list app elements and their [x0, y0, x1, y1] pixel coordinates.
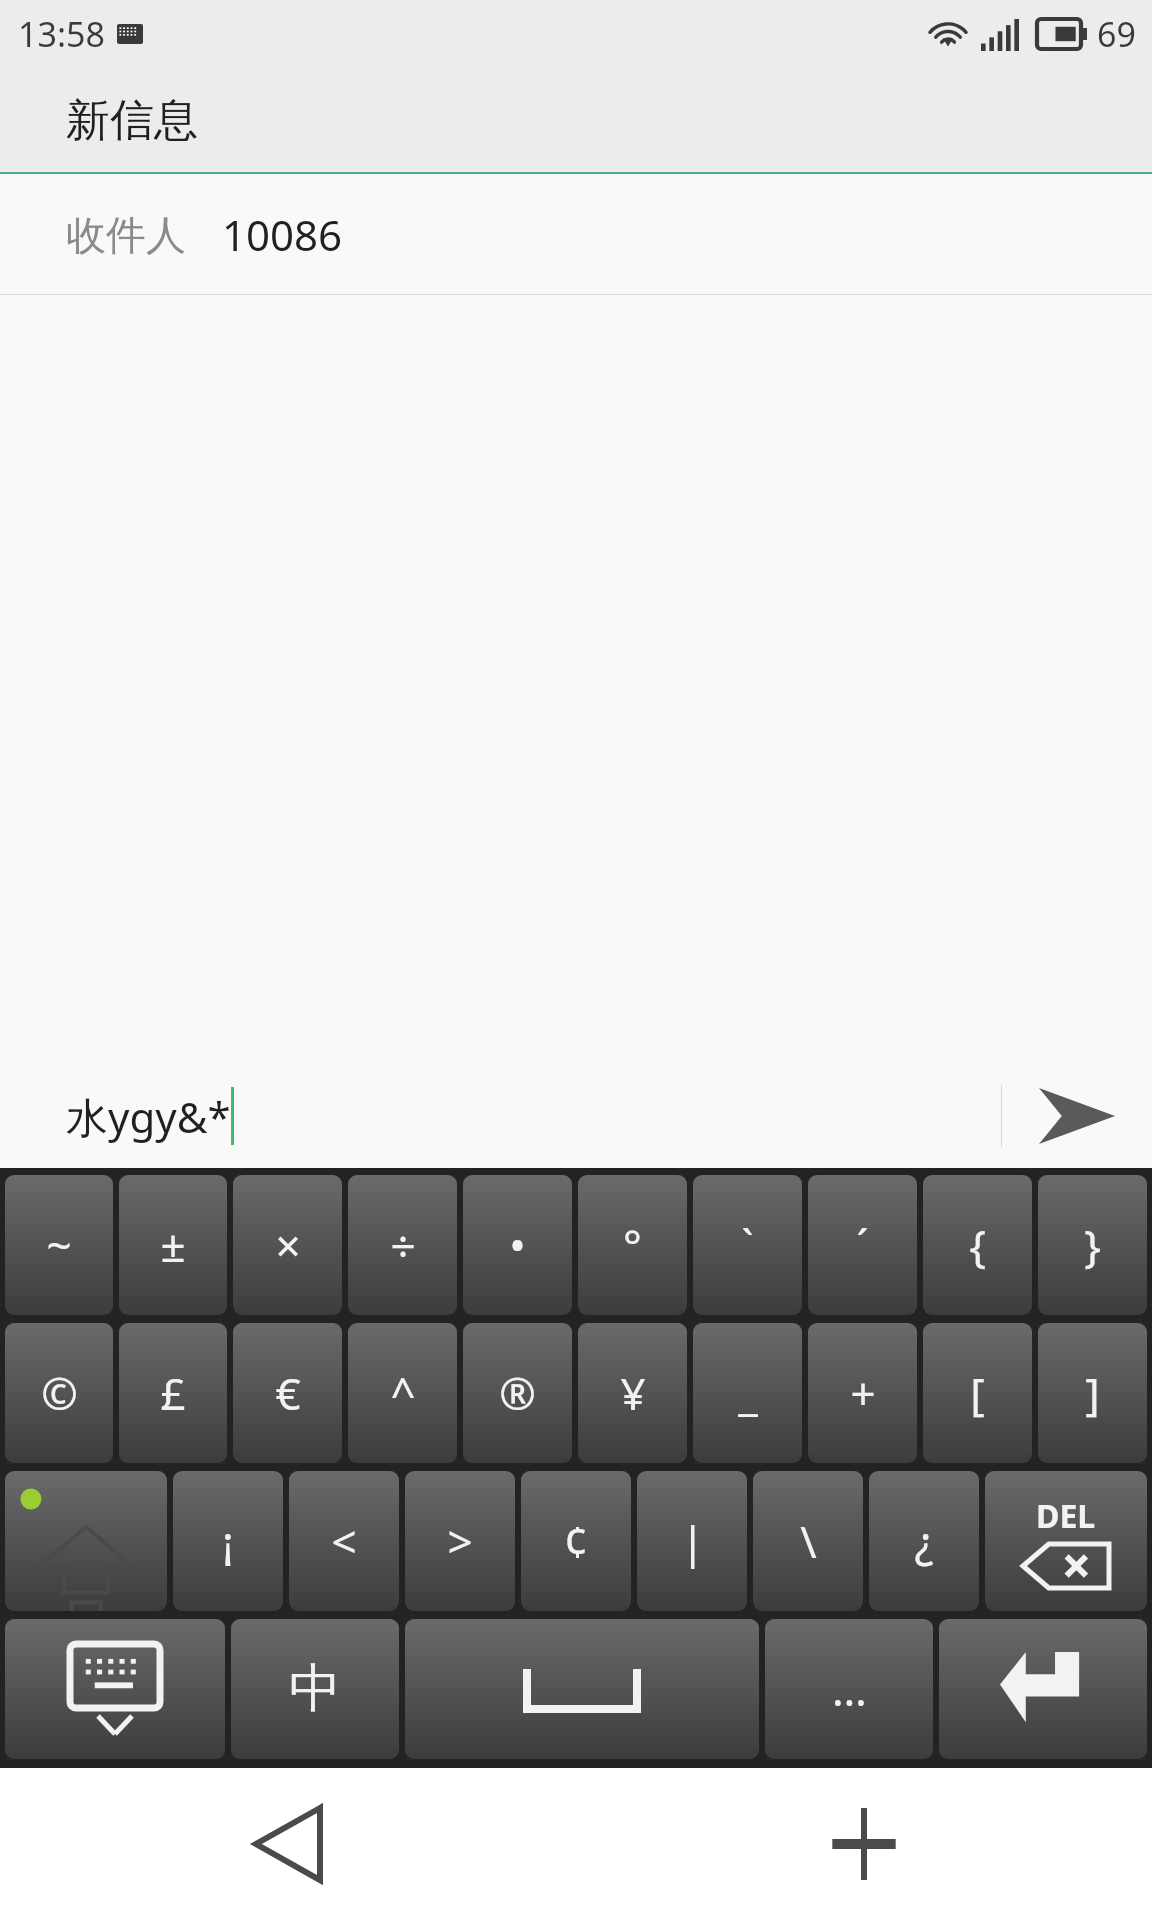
button[interactable]: Back: [0, 1768, 576, 1920]
button[interactable]: \: [753, 1471, 863, 1611]
button[interactable]: +: [808, 1323, 917, 1463]
button[interactable]: Delete: [985, 1471, 1147, 1611]
button[interactable]: £: [119, 1323, 227, 1463]
button[interactable]: >: [405, 1471, 515, 1611]
button[interactable]: _: [693, 1323, 802, 1463]
staticText: [: [970, 1363, 985, 1423]
button[interactable]: Add: [576, 1768, 1152, 1920]
staticText: 收件人: [66, 210, 186, 260]
staticText: >: [447, 1511, 473, 1571]
staticText: ¿: [914, 1511, 934, 1571]
staticText: 水ygy&*: [66, 1088, 231, 1145]
button[interactable]: °: [578, 1175, 687, 1315]
button[interactable]: •: [463, 1175, 572, 1315]
staticText: 中: [289, 1656, 341, 1722]
staticText: £: [160, 1363, 186, 1423]
staticText: €: [275, 1363, 301, 1423]
button[interactable]: ¡: [173, 1471, 283, 1611]
button[interactable]: More: [765, 1619, 933, 1759]
button[interactable]: 新信息: [0, 68, 1152, 172]
button[interactable]: ~: [5, 1175, 113, 1315]
staticText: ¢: [563, 1511, 589, 1571]
staticText: 69: [1097, 11, 1136, 57]
staticText: `: [741, 1215, 754, 1275]
button[interactable]: €: [233, 1323, 342, 1463]
button[interactable]: ¿: [869, 1471, 979, 1611]
button[interactable]: ©: [5, 1323, 113, 1463]
button[interactable]: Space: [405, 1619, 759, 1759]
button[interactable]: ±: [119, 1175, 227, 1315]
button[interactable]: 水ygy&*: [0, 1064, 1001, 1168]
button[interactable]: Enter: [939, 1619, 1147, 1759]
staticText: •: [509, 1215, 526, 1275]
button[interactable]: ¥: [578, 1323, 687, 1463]
staticText: _: [738, 1363, 758, 1423]
button[interactable]: Hide keyboard: [5, 1619, 225, 1759]
staticText: {: [969, 1215, 986, 1275]
staticText: <: [331, 1511, 357, 1571]
button[interactable]: ®: [463, 1323, 572, 1463]
button[interactable]: ×: [233, 1175, 342, 1315]
staticText: ^: [390, 1363, 416, 1423]
staticText: ÷: [390, 1215, 416, 1275]
button[interactable]: |: [637, 1471, 747, 1611]
button[interactable]: `: [693, 1175, 802, 1315]
staticText: …: [832, 1659, 867, 1719]
button[interactable]: ^: [348, 1323, 457, 1463]
staticText: |: [680, 1511, 705, 1571]
staticText: 新信息: [66, 93, 198, 148]
staticText: DEL: [1036, 1494, 1096, 1538]
button[interactable]: ´: [808, 1175, 917, 1315]
button[interactable]: ]: [1038, 1323, 1147, 1463]
button[interactable]: 中: [231, 1619, 399, 1759]
staticText: \: [800, 1511, 817, 1571]
staticText: ©: [41, 1363, 78, 1423]
staticText: 13:58: [18, 11, 105, 57]
button[interactable]: <: [289, 1471, 399, 1611]
button[interactable]: {: [923, 1175, 1032, 1315]
button[interactable]: }: [1038, 1175, 1147, 1315]
staticText: 10086: [222, 206, 343, 263]
staticText: ×: [275, 1215, 301, 1275]
staticText: ´: [856, 1215, 869, 1275]
button[interactable]: Shift: [5, 1471, 167, 1611]
staticText: ®: [499, 1363, 536, 1423]
button[interactable]: ¢: [521, 1471, 631, 1611]
button[interactable]: Send: [1002, 1064, 1152, 1168]
staticText: +: [850, 1363, 876, 1423]
staticText: ±: [160, 1215, 186, 1275]
button[interactable]: ÷: [348, 1175, 457, 1315]
staticText: °: [623, 1215, 642, 1275]
button[interactable]: 收件人: [0, 174, 1152, 294]
button[interactable]: [: [923, 1323, 1032, 1463]
staticText: ]: [1085, 1363, 1100, 1423]
staticText: ~: [46, 1215, 72, 1275]
staticText: ¥: [620, 1363, 646, 1423]
staticText: ¡: [222, 1511, 234, 1571]
staticText: }: [1084, 1215, 1101, 1275]
